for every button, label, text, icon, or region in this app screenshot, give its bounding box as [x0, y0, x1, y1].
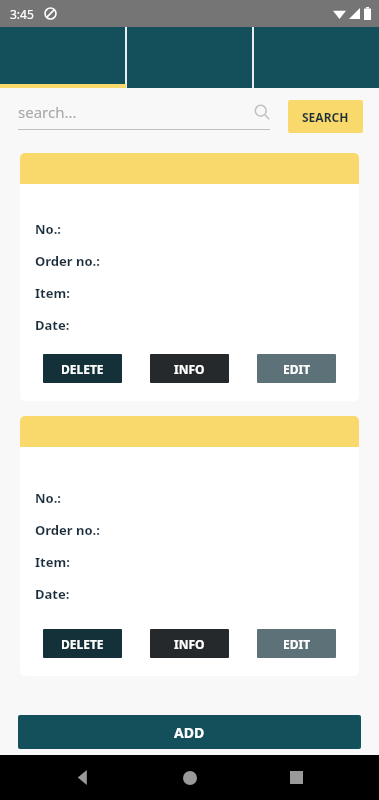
- staticText: search...: [18, 102, 254, 122]
- button[interactable]: search...: [18, 102, 270, 130]
- button[interactable]: INFO: [150, 354, 229, 383]
- button[interactable]: Back: [59, 755, 107, 800]
- staticText: ADD: [174, 723, 205, 742]
- staticText: EDIT: [283, 636, 311, 652]
- staticText: Date:: [35, 585, 70, 603]
- staticText: 3:45: [10, 6, 34, 22]
- button[interactable]: Home: [166, 755, 214, 800]
- button[interactable]: DELETE: [43, 354, 122, 383]
- staticText: SEARCH: [302, 109, 349, 125]
- staticText: No.:: [35, 220, 62, 238]
- staticText: Date:: [35, 316, 70, 334]
- button[interactable]: DELETE: [43, 629, 122, 658]
- button[interactable]: Recent apps: [272, 755, 320, 800]
- staticText: DELETE: [61, 636, 104, 652]
- button[interactable]: No.:: [20, 416, 359, 676]
- staticText: DELETE: [61, 361, 104, 377]
- staticText: Order no.:: [35, 252, 100, 270]
- staticText: INFO: [174, 636, 205, 652]
- staticText: INFO: [174, 361, 205, 377]
- button[interactable]: No.:: [20, 153, 359, 401]
- staticText: EDIT: [283, 361, 311, 377]
- button[interactable]: [0, 27, 125, 88]
- button[interactable]: EDIT: [257, 354, 336, 383]
- button[interactable]: INFO: [150, 629, 229, 658]
- staticText: Item:: [35, 553, 70, 571]
- button[interactable]: SEARCH: [288, 100, 363, 133]
- button[interactable]: ADD: [18, 715, 361, 749]
- staticText: Item:: [35, 284, 70, 302]
- button[interactable]: EDIT: [257, 629, 336, 658]
- staticText: No.:: [35, 489, 62, 507]
- staticText: Order no.:: [35, 521, 100, 539]
